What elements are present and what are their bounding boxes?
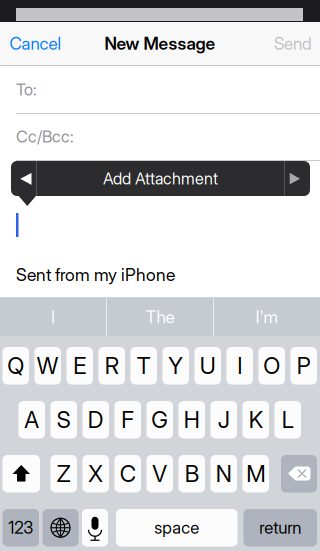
- button[interactable]: Next: [285, 161, 310, 196]
- button[interactable]: Send: [240, 22, 320, 65]
- button[interactable]: space: [116, 509, 237, 546]
- button[interactable]: T: [130, 347, 157, 384]
- staticText: space: [154, 518, 199, 538]
- button[interactable]: K: [242, 401, 269, 438]
- staticText: Cancel: [9, 33, 61, 54]
- staticText: C: [120, 460, 136, 487]
- button[interactable]: X: [82, 455, 109, 492]
- button[interactable]: I'm: [214, 298, 320, 336]
- button[interactable]: I: [226, 347, 253, 384]
- button[interactable]: P: [290, 347, 317, 384]
- button[interactable]: S: [50, 401, 77, 438]
- staticText: F: [121, 406, 134, 433]
- button[interactable]: H: [178, 401, 205, 438]
- staticText: J: [218, 406, 230, 433]
- staticText: Cc/Bcc:: [16, 127, 74, 146]
- staticText: G: [151, 406, 168, 433]
- staticText: K: [249, 406, 263, 433]
- button[interactable]: Delete: [281, 455, 317, 492]
- button[interactable]: E: [66, 347, 93, 384]
- button[interactable]: Y: [162, 347, 189, 384]
- staticText: D: [88, 406, 104, 433]
- staticText: U: [200, 352, 216, 379]
- staticText: Q: [7, 352, 24, 379]
- button[interactable]: Cc/Bcc:: [0, 113, 320, 160]
- button[interactable]: R: [98, 347, 125, 384]
- staticText: O: [263, 352, 280, 379]
- staticText: M: [246, 460, 265, 487]
- staticText: H: [184, 406, 200, 433]
- button[interactable]: return: [243, 509, 317, 546]
- button[interactable]: Q: [2, 347, 29, 384]
- button[interactable]: W: [34, 347, 61, 384]
- staticText: B: [185, 460, 199, 487]
- button[interactable]: Next keyboard: [42, 509, 78, 546]
- staticText: New Message: [104, 33, 215, 54]
- staticText: The: [145, 306, 174, 327]
- staticText: N: [216, 460, 232, 487]
- staticText: T: [137, 352, 151, 379]
- staticText: V: [152, 460, 167, 487]
- button[interactable]: Cancel: [0, 22, 90, 65]
- button[interactable]: 123: [2, 509, 39, 546]
- staticText: W: [37, 352, 59, 379]
- button[interactable]: Add Attachment: [37, 161, 284, 196]
- button[interactable]: To:: [0, 66, 320, 113]
- button[interactable]: Previous: [11, 161, 36, 196]
- staticText: X: [88, 460, 103, 487]
- staticText: Z: [57, 460, 71, 487]
- staticText: I: [51, 306, 55, 327]
- staticText: I'm: [255, 306, 278, 327]
- staticText: E: [73, 352, 86, 379]
- button[interactable]: B: [178, 455, 205, 492]
- staticText: L: [282, 406, 294, 433]
- staticText: P: [297, 352, 311, 379]
- staticText: 123: [8, 518, 33, 538]
- staticText: R: [105, 352, 119, 379]
- staticText: Y: [168, 352, 183, 379]
- staticText: To:: [16, 80, 37, 99]
- staticText: A: [24, 406, 39, 433]
- staticText: Send: [274, 33, 312, 54]
- button[interactable]: The: [107, 298, 213, 336]
- button[interactable]: G: [146, 401, 173, 438]
- button[interactable]: I: [0, 298, 106, 336]
- button[interactable]: V: [146, 455, 173, 492]
- button[interactable]: A: [18, 401, 45, 438]
- staticText: Sent from my iPhone: [16, 264, 175, 285]
- button[interactable]: Shift: [2, 455, 40, 492]
- staticText: I: [237, 352, 242, 379]
- button[interactable]: O: [258, 347, 285, 384]
- staticText: return: [259, 518, 301, 538]
- button[interactable]: Dictate: [82, 509, 108, 546]
- staticText: S: [57, 406, 71, 433]
- button[interactable]: C: [114, 455, 141, 492]
- button[interactable]: Z: [50, 455, 77, 492]
- button[interactable]: D: [82, 401, 109, 438]
- button[interactable]: N: [210, 455, 237, 492]
- staticText: Add Attachment: [103, 169, 218, 188]
- button[interactable]: M: [242, 455, 269, 492]
- button[interactable]: F: [114, 401, 141, 438]
- button[interactable]: L: [274, 401, 301, 438]
- button[interactable]: U: [194, 347, 221, 384]
- button[interactable]: J: [210, 401, 237, 438]
